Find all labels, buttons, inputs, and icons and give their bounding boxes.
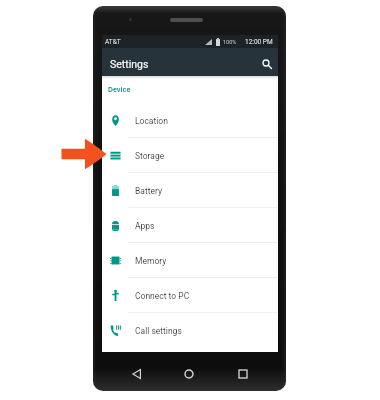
staticText: 100% — [223, 39, 237, 45]
button[interactable]: Battery — [102, 173, 278, 208]
staticText: Battery — [135, 186, 162, 196]
button[interactable]: Call settings — [102, 313, 278, 348]
button[interactable]: Home — [178, 363, 200, 385]
button[interactable]: Connect to PC — [102, 278, 278, 313]
staticText: Location — [135, 116, 168, 126]
button[interactable]: Apps — [102, 208, 278, 243]
staticText: Storage — [135, 151, 165, 161]
button[interactable]: Storage — [102, 138, 278, 173]
staticText: Call settings — [135, 326, 182, 336]
staticText: Settings — [110, 58, 149, 70]
staticText: Device — [108, 85, 131, 94]
button[interactable]: Back — [126, 363, 148, 385]
button[interactable]: Location — [102, 103, 278, 138]
staticText: Apps — [135, 221, 155, 231]
staticText: Connect to PC — [135, 291, 190, 301]
staticText: Memory — [135, 256, 167, 266]
button[interactable]: Memory — [102, 243, 278, 278]
button[interactable]: Recent apps — [232, 363, 254, 385]
staticText: AT&T — [105, 38, 121, 46]
staticText: 12:00 PM — [245, 38, 273, 46]
button[interactable]: Search — [258, 55, 276, 73]
